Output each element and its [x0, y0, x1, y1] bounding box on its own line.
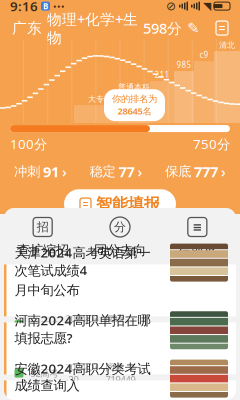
staticText: 2024-03-20 — [65, 312, 98, 337]
button[interactable]: 广东 — [12, 9, 199, 47]
staticText: 清北 — [219, 40, 235, 50]
staticText: c9 — [199, 49, 208, 60]
staticText: 广东 — [12, 19, 42, 37]
staticText: › — [62, 162, 67, 181]
staticText: 招 — [37, 220, 49, 234]
staticText: 分 — [114, 220, 126, 234]
staticText: › — [137, 162, 142, 181]
staticText: 28645名 — [117, 105, 151, 117]
staticText: ≡ — [192, 220, 202, 234]
staticText: 天津2024高考英语第一次笔试成绩4 — [14, 244, 150, 279]
button[interactable]: 分 — [81, 216, 159, 258]
staticText: 大专 — [88, 94, 104, 104]
staticText: 52高考 — [30, 319, 58, 331]
staticText: 100分 — [10, 135, 47, 153]
staticText: 物理+化学+生物 — [47, 9, 138, 47]
button[interactable]: 天津2024高考英语第一次笔试成绩4 — [4, 264, 236, 316]
staticText: 冲刺 — [14, 163, 40, 180]
button[interactable]: ≡ — [159, 216, 236, 258]
staticText: 777 — [194, 162, 218, 181]
staticText: 阅读 719449 — [105, 361, 135, 385]
staticText: 211 — [154, 69, 169, 80]
staticText: 河南2024高职单招在哪填报志愿? — [14, 311, 150, 347]
button[interactable]: 智能填报 — [64, 189, 176, 219]
staticText: 稳定 — [89, 163, 115, 180]
staticText: 保底 — [165, 163, 191, 180]
staticText: 智能填报 — [96, 194, 160, 214]
staticText: 52高考 — [30, 367, 58, 379]
staticText: 阅读 411201 — [105, 312, 135, 337]
button[interactable]: 招 — [4, 216, 81, 258]
button[interactable]: 冲刺 — [14, 162, 67, 181]
staticText: 985 — [176, 59, 191, 70]
staticText: ⊘ — [166, 0, 176, 13]
button[interactable]: 安徽2024高职分类考试成绩查询入 — [4, 380, 236, 400]
staticText: 598分 — [143, 18, 182, 38]
button[interactable]: 河南2024高职单招在哪填报志愿? — [4, 322, 236, 374]
staticText: 你的排名为 — [112, 93, 157, 105]
staticText: 同分去向 — [94, 242, 146, 258]
button[interactable]: 稳定 — [89, 162, 142, 181]
staticText: ••• — [53, 0, 65, 12]
staticText: 2024-03-20 — [65, 361, 98, 385]
button[interactable]: 保底 — [165, 162, 226, 181]
staticText: 普通本科 — [118, 82, 150, 92]
staticText: 77 — [118, 162, 134, 181]
staticText: 750分 — [193, 135, 230, 153]
staticText: 91 — [43, 162, 59, 181]
button[interactable]: Report — [216, 21, 228, 35]
staticText: 提前批 — [178, 242, 217, 258]
staticText: › — [221, 162, 226, 181]
staticText: ✎ — [187, 20, 199, 36]
staticText: 月中旬公布 — [14, 282, 79, 298]
staticText: 查扩缩招 — [17, 242, 69, 258]
staticText: B — [43, 1, 48, 11]
staticText: 9:16 — [10, 0, 38, 15]
staticText: ◥ — [203, 0, 211, 12]
staticText: 安徽2024高职分类考试成绩查询入 — [14, 360, 150, 394]
